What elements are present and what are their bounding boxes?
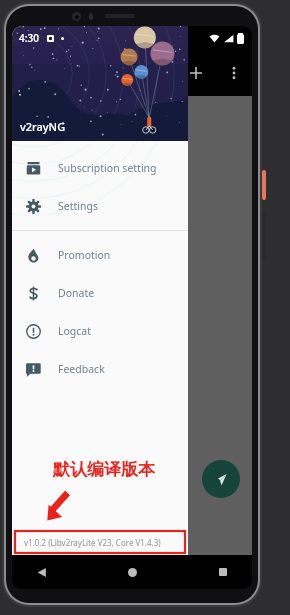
button[interactable]: Feedback [12,350,188,388]
staticText: Logcat [58,324,92,338]
staticText: v1.0.2 (Libv2rayLite V23, Core V1.4.3) [24,537,161,548]
button[interactable]: More options [216,55,252,91]
button[interactable]: Add [176,53,216,93]
button[interactable]: Logcat [12,312,188,350]
staticText: Promotion [58,248,111,262]
button[interactable]: Home [117,557,147,587]
button[interactable]: Donate [12,274,188,312]
staticText: 默认编译版本 [53,459,155,480]
staticText: 4:30 [19,31,39,45]
staticText: v2rayNG [20,119,66,134]
button[interactable]: Recents [208,557,238,587]
staticText: Feedback [58,362,105,376]
button[interactable]: Connect [202,460,240,498]
button[interactable]: Settings [12,187,188,225]
button[interactable]: Promotion [12,236,188,274]
button[interactable]: Back [26,557,56,587]
button[interactable]: Subscription setting [12,149,188,187]
staticText: Settings [58,199,98,213]
staticText: Donate [58,286,95,300]
staticText: Subscription setting [58,161,157,175]
